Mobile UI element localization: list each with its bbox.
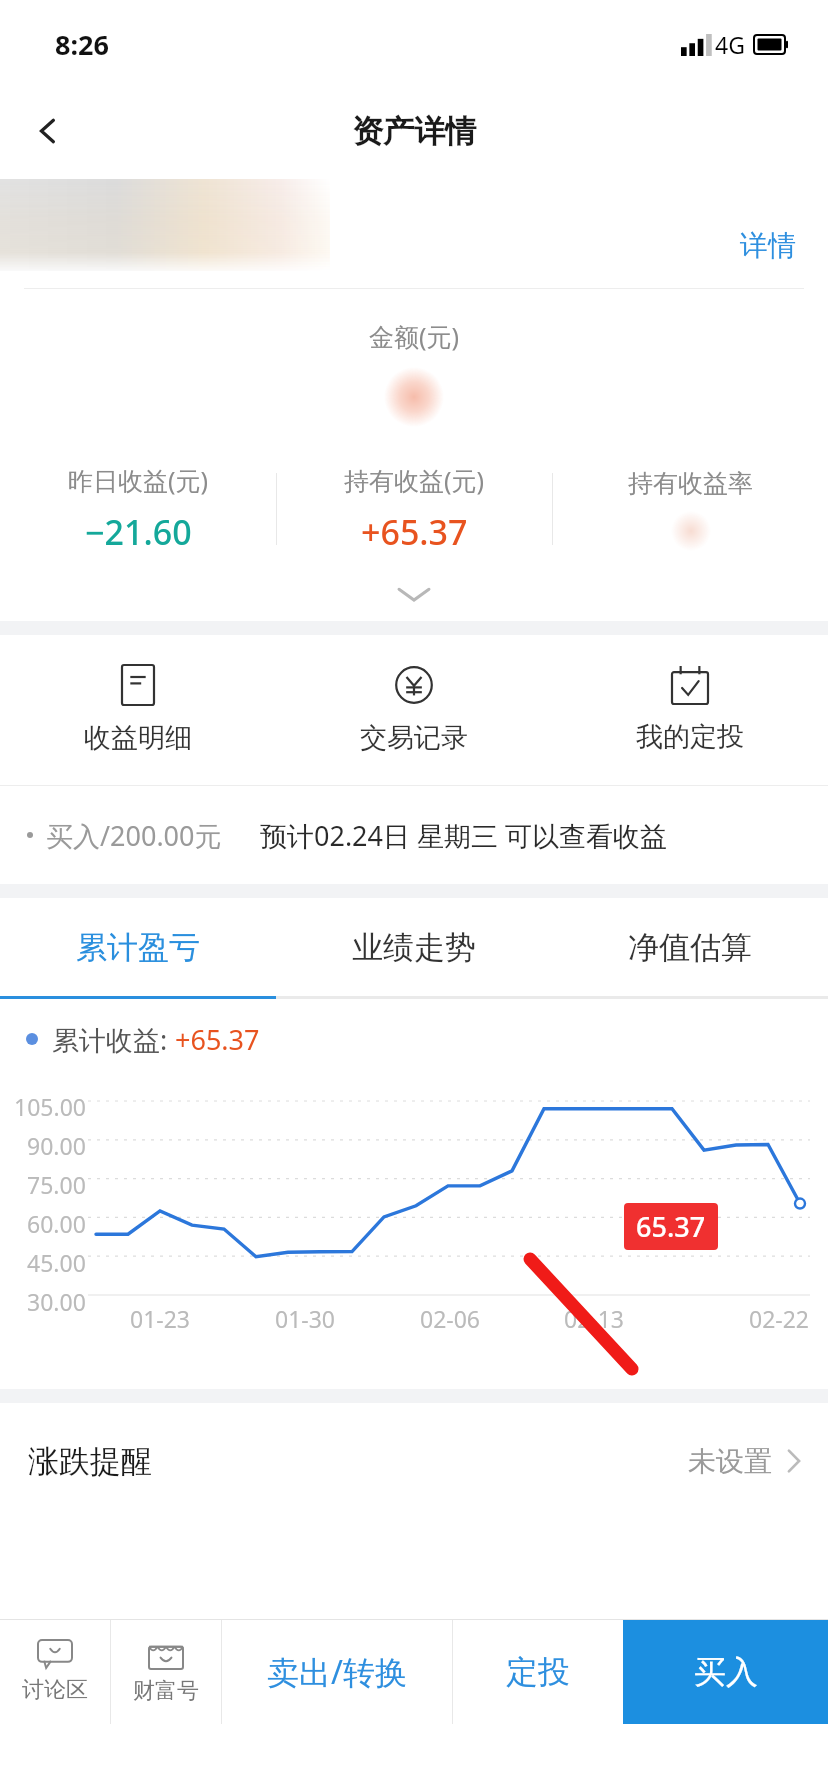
staticText: 交易记录 — [360, 721, 468, 755]
staticText: 02-06 — [420, 1303, 481, 1334]
button[interactable]: 讨论区 — [0, 1620, 110, 1724]
button[interactable]: 业绩走势 — [276, 898, 552, 996]
staticText: 财富号 — [133, 1677, 199, 1705]
button[interactable]: 定投 — [453, 1620, 623, 1724]
button[interactable]: 净值估算 — [552, 898, 828, 996]
staticText: 累计收益: — [52, 1021, 175, 1058]
button[interactable]: 财富号 — [111, 1620, 221, 1724]
staticText: 定投 — [506, 1652, 570, 1692]
button[interactable]: 卖出/转换 — [222, 1620, 452, 1724]
staticText: 昨日收益(元) — [68, 463, 209, 497]
staticText: 65.37 — [636, 1208, 706, 1245]
staticText: 累计盈亏 — [76, 928, 200, 967]
staticText: 买入/200.00元 — [46, 817, 222, 854]
button[interactable]: 交易记录 — [276, 635, 552, 785]
staticText: 预计02.24日 星期三 可以查看收益 — [260, 817, 668, 854]
button[interactable]: 我的定投 — [552, 635, 828, 785]
staticText: 持有收益(元) — [344, 463, 485, 497]
button[interactable]: 昨日收益(元) — [0, 449, 276, 569]
staticText: 买入 — [694, 1652, 758, 1692]
staticText: 未设置 — [688, 1444, 772, 1479]
staticText: 75.00 — [27, 1169, 86, 1200]
button[interactable]: Back — [18, 101, 78, 161]
staticText: 02-13 — [564, 1303, 625, 1334]
staticText: 净值估算 — [628, 928, 752, 967]
button[interactable]: 持有收益率 — [553, 449, 828, 569]
button[interactable]: 持有收益(元) — [277, 449, 552, 569]
staticText: 01-23 — [130, 1303, 191, 1334]
button[interactable]: 买入/200.00元 — [0, 786, 828, 884]
staticText: 02-22 — [749, 1303, 810, 1334]
button[interactable]: Expand — [0, 569, 828, 621]
staticText: 90.00 — [27, 1130, 86, 1161]
button[interactable]: 涨跌提醒 — [0, 1403, 828, 1519]
staticText: +65.37 — [175, 1021, 260, 1058]
staticText: 持有收益率 — [628, 468, 753, 499]
staticText: 01-30 — [275, 1303, 336, 1334]
staticText: 45.00 — [27, 1247, 86, 1278]
staticText: 资产详情 — [352, 112, 476, 151]
staticText: 30.00 — [27, 1286, 86, 1317]
staticText: 业绩走势 — [352, 928, 476, 967]
staticText: 金额(元) — [0, 319, 828, 353]
staticText: 60.00 — [27, 1208, 86, 1239]
staticText: 收益明细 — [84, 721, 192, 755]
staticText: 涨跌提醒 — [28, 1442, 152, 1481]
button[interactable]: 收益明细 — [0, 635, 276, 785]
staticText: 4G — [715, 29, 745, 60]
staticText: 我的定投 — [636, 720, 744, 754]
staticText: 105.00 — [14, 1091, 86, 1122]
button[interactable]: 详情 — [740, 228, 796, 263]
staticText: 讨论区 — [22, 1676, 88, 1704]
button[interactable]: 累计盈亏 — [0, 898, 276, 996]
button[interactable]: 买入 — [623, 1620, 828, 1724]
staticText: 8:26 — [55, 26, 109, 63]
staticText: 卖出/转换 — [267, 1650, 407, 1694]
staticText: −21.60 — [85, 509, 192, 555]
staticText: +65.37 — [361, 509, 468, 555]
